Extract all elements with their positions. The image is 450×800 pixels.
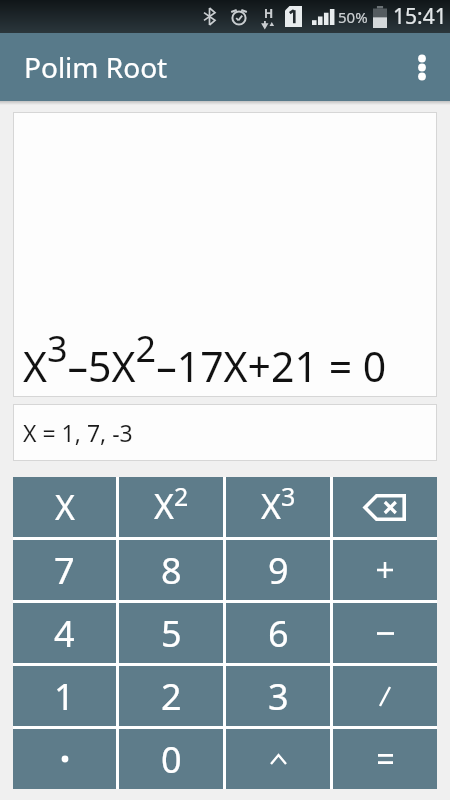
button[interactable]: 6 [226,603,330,663]
button[interactable]: 2 [119,666,223,726]
button[interactable] [333,477,437,537]
button[interactable]: 8 [119,540,223,600]
staticText: Polim Root [24,48,168,86]
button[interactable]: X3–5X2–17X+21 = 0 [13,112,437,397]
button[interactable] [226,729,330,789]
staticText: 4 [54,609,75,658]
staticText: H [264,5,274,21]
staticText: 7 [54,546,75,595]
staticText: 3 [268,672,289,721]
button[interactable]: X = 1, 7, -3 [13,404,437,461]
button[interactable] [333,603,437,663]
staticText: 6 [268,609,289,658]
staticText: 8 [161,546,182,595]
staticText: X2 [154,479,189,529]
staticText: 9 [268,546,289,595]
button[interactable]: 5 [119,603,223,663]
button[interactable] [13,729,116,789]
staticText: 15:41 [393,2,447,31]
button[interactable]: X [13,477,116,537]
button[interactable] [333,540,437,600]
button[interactable]: X2 [119,477,223,537]
button[interactable] [333,729,437,789]
button[interactable]: 9 [226,540,330,600]
button[interactable] [396,41,448,93]
staticText: 2 [161,672,182,721]
staticText: X = 1, 7, -3 [23,417,133,448]
button[interactable]: 3 [226,666,330,726]
staticText: 5 [161,609,182,658]
staticText: 50% [338,7,368,27]
button[interactable]: X3 [226,477,330,537]
staticText: 1 [54,672,75,721]
button[interactable]: 0 [119,729,223,789]
button[interactable]: 4 [13,603,116,663]
staticText: X3 [261,479,296,529]
button[interactable] [333,666,437,726]
staticText: X [55,484,75,530]
staticText: X3–5X2–17X+21 = 0 [23,324,387,395]
staticText: 0 [161,735,182,784]
button[interactable]: 7 [13,540,116,600]
button[interactable]: 1 [13,666,116,726]
